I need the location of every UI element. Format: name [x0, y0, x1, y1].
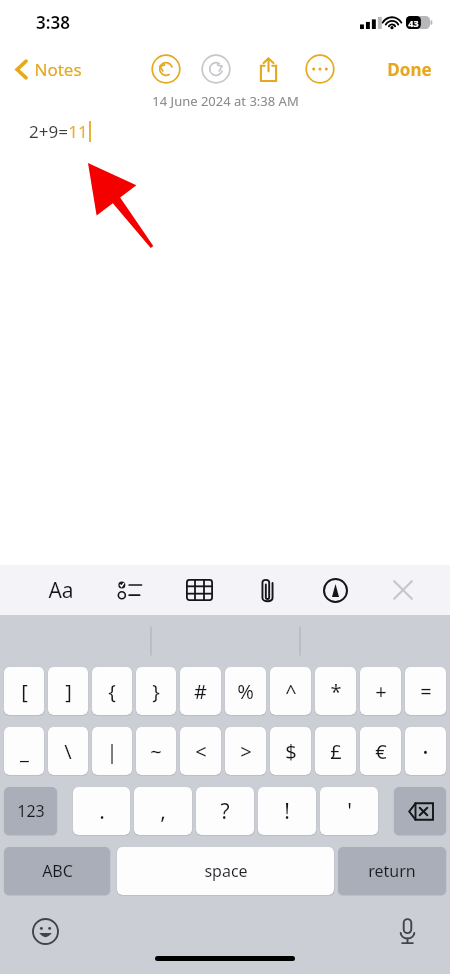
staticText: *	[330, 678, 342, 705]
button[interactable]: $	[270, 727, 311, 775]
button[interactable]: return	[338, 847, 446, 895]
staticText: 3:38	[36, 11, 70, 34]
staticText: £	[330, 738, 342, 765]
staticText: }	[152, 678, 160, 705]
staticText: Notes	[34, 58, 82, 81]
staticText: 11	[68, 120, 88, 143]
staticText: ABC	[42, 860, 73, 882]
button[interactable]: [	[4, 667, 44, 715]
button[interactable]: ?	[196, 787, 254, 835]
staticText: Done	[387, 58, 432, 81]
staticText: [	[21, 678, 28, 705]
staticText: .	[99, 797, 105, 826]
button[interactable]: Emoji	[28, 914, 62, 948]
button[interactable]: _	[4, 727, 44, 775]
button[interactable]: Backspace	[394, 787, 446, 835]
staticText: ?	[220, 797, 230, 826]
button[interactable]: Markup	[314, 565, 356, 615]
button[interactable]: !	[258, 787, 316, 835]
button[interactable]: *	[315, 667, 356, 715]
button[interactable]: More options	[305, 54, 335, 84]
staticText: ,	[160, 797, 166, 826]
button[interactable]: ,	[134, 787, 192, 835]
button[interactable]: |	[92, 727, 132, 775]
button[interactable]: Checklist	[109, 565, 151, 615]
other: Back	[16, 60, 27, 79]
staticText: !	[284, 797, 290, 826]
staticText: €	[375, 738, 387, 765]
button[interactable]: +	[360, 667, 401, 715]
staticText: '	[347, 797, 352, 826]
staticText: ·	[422, 735, 429, 768]
staticText: %	[237, 678, 254, 705]
button[interactable]: Dictation	[390, 914, 424, 948]
staticText: ~	[150, 738, 162, 765]
button[interactable]: £	[315, 727, 356, 775]
button[interactable]: ^	[270, 667, 311, 715]
button[interactable]: '	[320, 787, 378, 835]
button[interactable]: Format text	[40, 565, 82, 615]
staticText: return	[368, 860, 416, 882]
button[interactable]: Close keyboard	[382, 565, 424, 615]
button[interactable]: Attach	[246, 565, 288, 615]
button[interactable]: }	[136, 667, 176, 715]
staticText: >	[240, 738, 252, 765]
button[interactable]: \	[48, 727, 88, 775]
staticText: +	[375, 678, 387, 705]
button[interactable]: <	[180, 727, 221, 775]
button[interactable]: {	[92, 667, 132, 715]
button[interactable]: ABC	[4, 847, 110, 895]
staticText: $	[285, 738, 297, 765]
staticText: <	[195, 738, 207, 765]
staticText: _	[20, 738, 29, 765]
button[interactable]: ·	[405, 727, 446, 775]
staticText: =	[420, 678, 432, 705]
button[interactable]: Table	[178, 565, 220, 615]
staticText: {	[108, 678, 116, 705]
staticText: ]	[65, 678, 72, 705]
button[interactable]: Done	[383, 54, 436, 85]
button[interactable]: Share	[251, 52, 285, 86]
staticText: 2+9=	[29, 120, 68, 143]
staticText: |	[106, 738, 118, 765]
staticText: space	[204, 860, 248, 882]
button[interactable]: Back	[12, 54, 86, 85]
button[interactable]: ]	[48, 667, 88, 715]
button[interactable]: >	[225, 727, 266, 775]
button[interactable]: #	[180, 667, 221, 715]
button[interactable]: Undo	[151, 54, 181, 84]
button[interactable]: €	[360, 727, 401, 775]
button[interactable]: .	[73, 787, 130, 835]
button[interactable]: %	[225, 667, 266, 715]
button[interactable]: 123	[4, 787, 57, 835]
button[interactable]: space	[117, 847, 334, 895]
staticText: \	[64, 738, 72, 765]
staticText: 14 June 2024 at 3:38 AM	[152, 92, 299, 110]
staticText: 123	[17, 800, 45, 822]
staticText: 43	[408, 17, 419, 29]
button[interactable]: Redo	[201, 54, 231, 84]
staticText: #	[194, 678, 207, 705]
staticText: Aa	[48, 576, 74, 605]
button[interactable]: =	[405, 667, 446, 715]
button[interactable]: ~	[136, 727, 176, 775]
staticText: ^	[285, 678, 297, 705]
